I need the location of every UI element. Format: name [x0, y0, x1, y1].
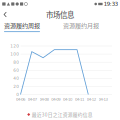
- staticText: 04-06: [16, 97, 25, 102]
- staticText: 最近30日之江资源履约信息: [32, 111, 93, 118]
- staticText: 19:33: [104, 1, 118, 7]
- staticText: 80: [13, 60, 19, 65]
- staticText: 04-10: [63, 97, 72, 102]
- staticText: 资源履约周报: [4, 21, 40, 30]
- staticText: 04-13: [98, 97, 107, 102]
- staticText: 04-12: [87, 97, 96, 102]
- staticText: 资源履约月报: [63, 21, 99, 30]
- staticText: 120: [10, 43, 19, 48]
- button[interactable]: Back: [0, 9, 12, 20]
- staticText: 40: [13, 76, 19, 81]
- staticText: 20: [13, 84, 19, 89]
- staticText: 04-08: [39, 97, 48, 102]
- button[interactable]: 资源履约月报: [63, 21, 99, 32]
- staticText: 04-11: [75, 97, 84, 102]
- staticText: 60: [13, 68, 19, 73]
- staticText: 0: [16, 92, 19, 97]
- staticText: 市场信息: [46, 9, 74, 20]
- button[interactable]: 最近30日之江资源履约信息: [27, 109, 93, 120]
- staticText: 100: [10, 52, 19, 57]
- staticText: 04-07: [28, 97, 37, 102]
- staticText: 04-09: [51, 97, 60, 102]
- button[interactable]: 资源履约周报: [4, 21, 40, 32]
